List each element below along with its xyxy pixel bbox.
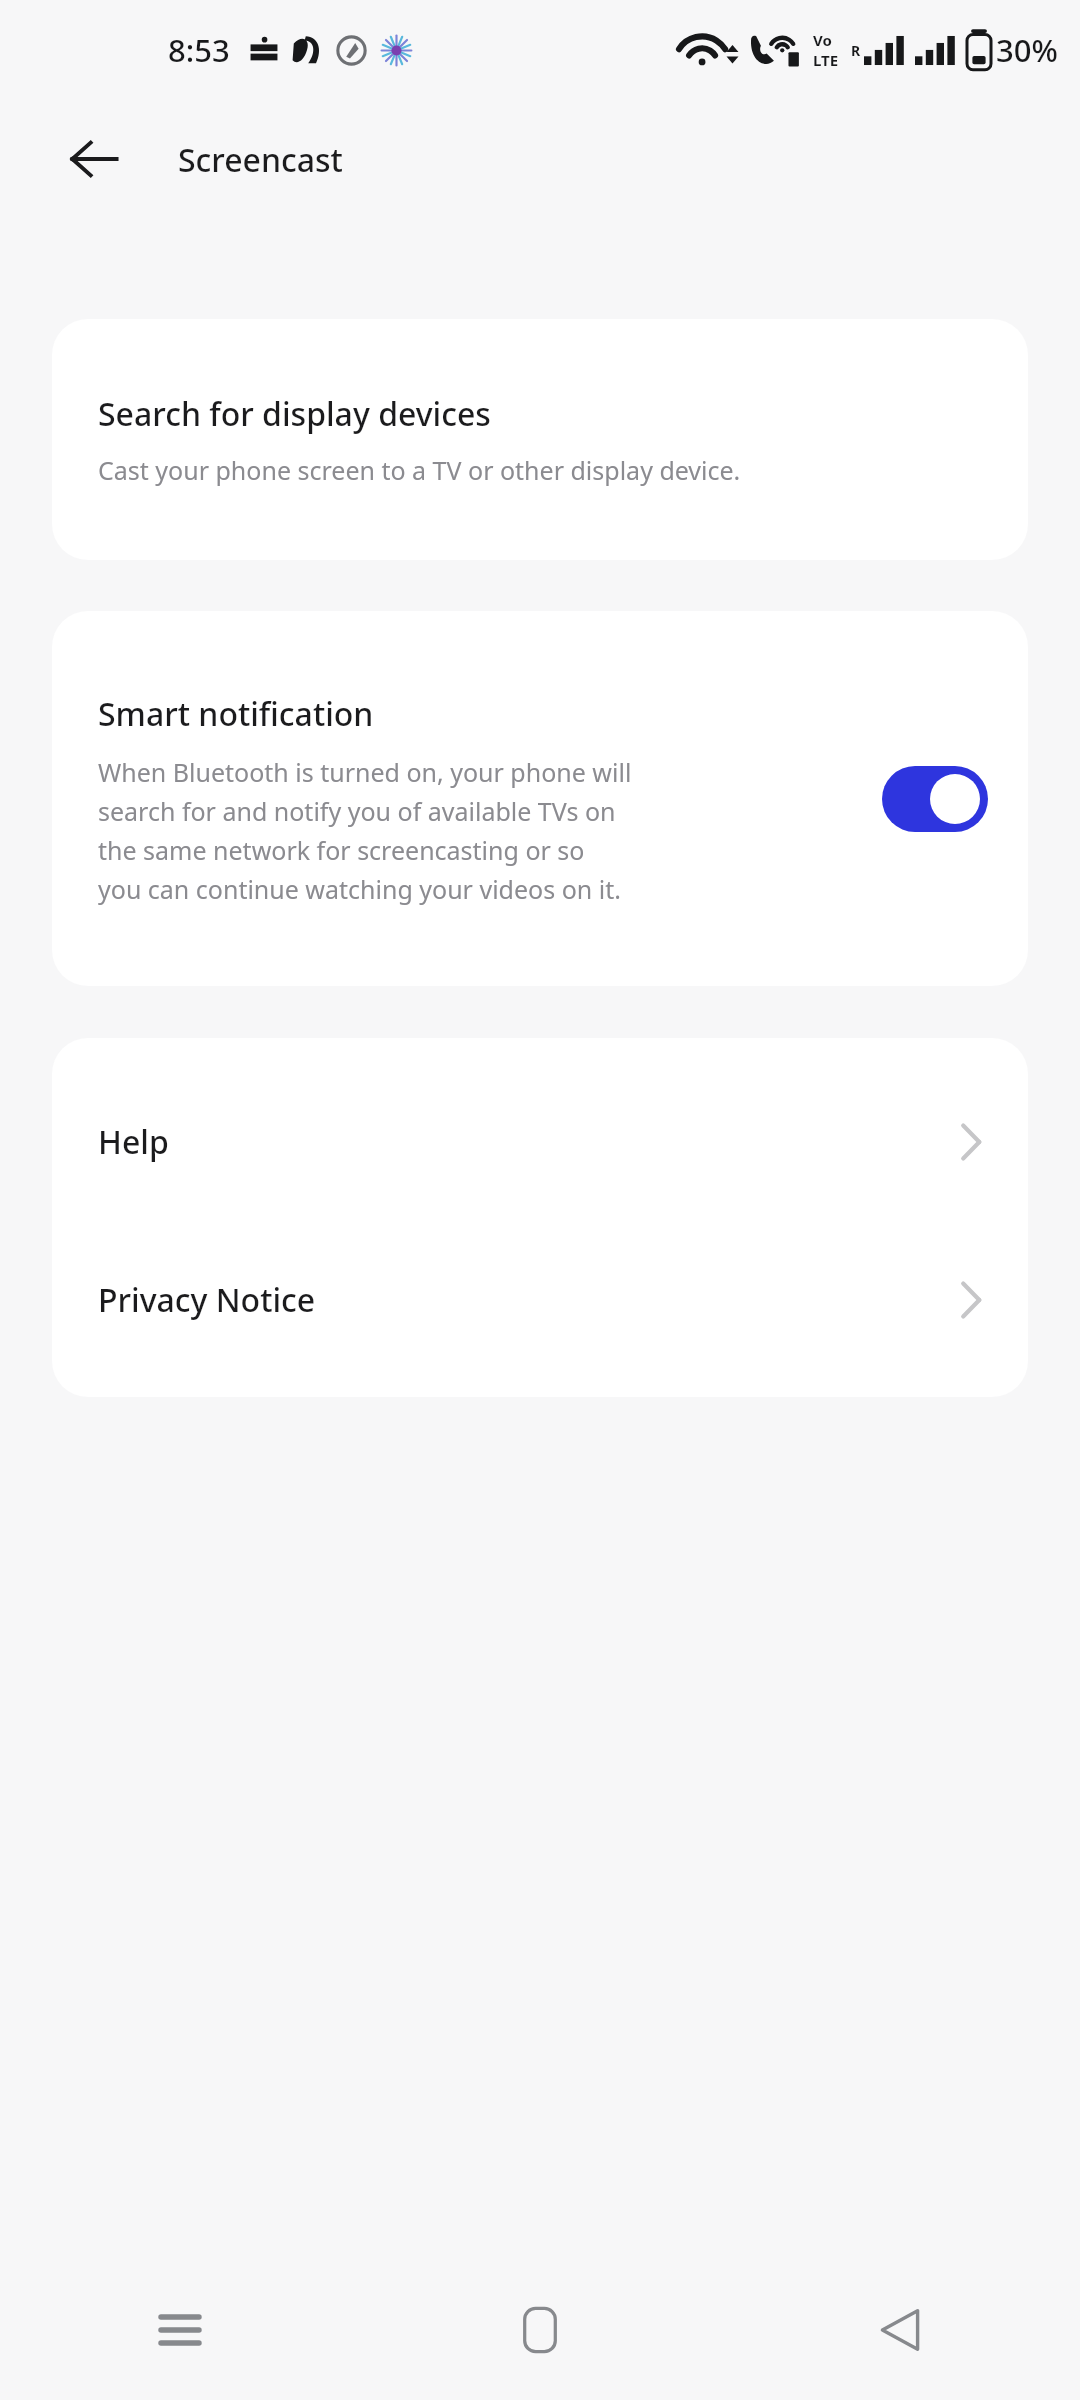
button[interactable]: Smart notification, on [882,766,988,832]
staticText: Help [98,1120,958,1164]
staticText: R [851,41,861,60]
button[interactable]: Home [360,2260,720,2400]
button[interactable]: Privacy Notice [52,1254,1028,1345]
staticText: 30% [996,29,1058,71]
staticText: Smart notification [98,692,374,736]
staticText: Cast your phone screen to a TV or other … [98,453,741,487]
button[interactable]: Back [720,2260,1080,2400]
button[interactable]: Smart notification [52,611,1028,986]
staticText: When Bluetooth is turned on, your phone … [98,755,632,906]
staticText: LTE [813,50,839,70]
button[interactable]: Help [52,1096,1028,1187]
staticText: Screencast [178,138,343,182]
staticText: Vo [813,30,832,50]
staticText: Search for display devices [98,392,491,436]
button[interactable]: Recent apps [0,2260,360,2400]
staticText: Privacy Notice [98,1278,958,1322]
button[interactable]: Back [54,119,134,199]
button[interactable]: Search for display devices [52,319,1028,560]
staticText: 8:53 [168,29,230,71]
